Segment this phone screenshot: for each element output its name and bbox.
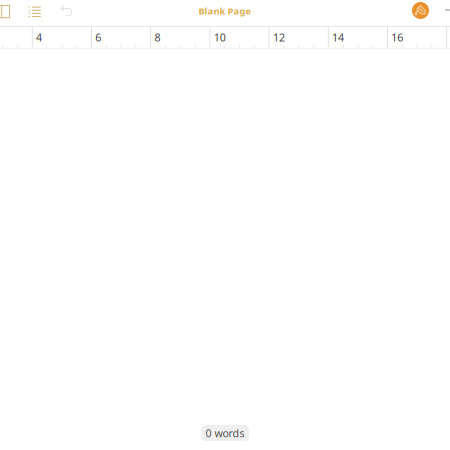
staticText: 16 (391, 30, 403, 45)
button[interactable]: Format (412, 0, 429, 26)
staticText: 4 (36, 30, 42, 45)
staticText: 0 words (205, 426, 244, 440)
staticText: 12 (273, 30, 285, 45)
staticText: 10 (214, 30, 226, 45)
staticText: 8 (154, 30, 160, 45)
button[interactable]: Undo (60, 0, 72, 26)
staticText: 6 (95, 30, 101, 45)
button[interactable]: More (445, 0, 450, 26)
staticText: Blank Page (198, 5, 251, 17)
button[interactable]: Show Sidebar (0, 0, 10, 26)
button[interactable]: Bullets and Lists (28, 0, 41, 26)
button[interactable]: 0 words (201, 425, 249, 441)
staticText: 14 (332, 30, 344, 45)
